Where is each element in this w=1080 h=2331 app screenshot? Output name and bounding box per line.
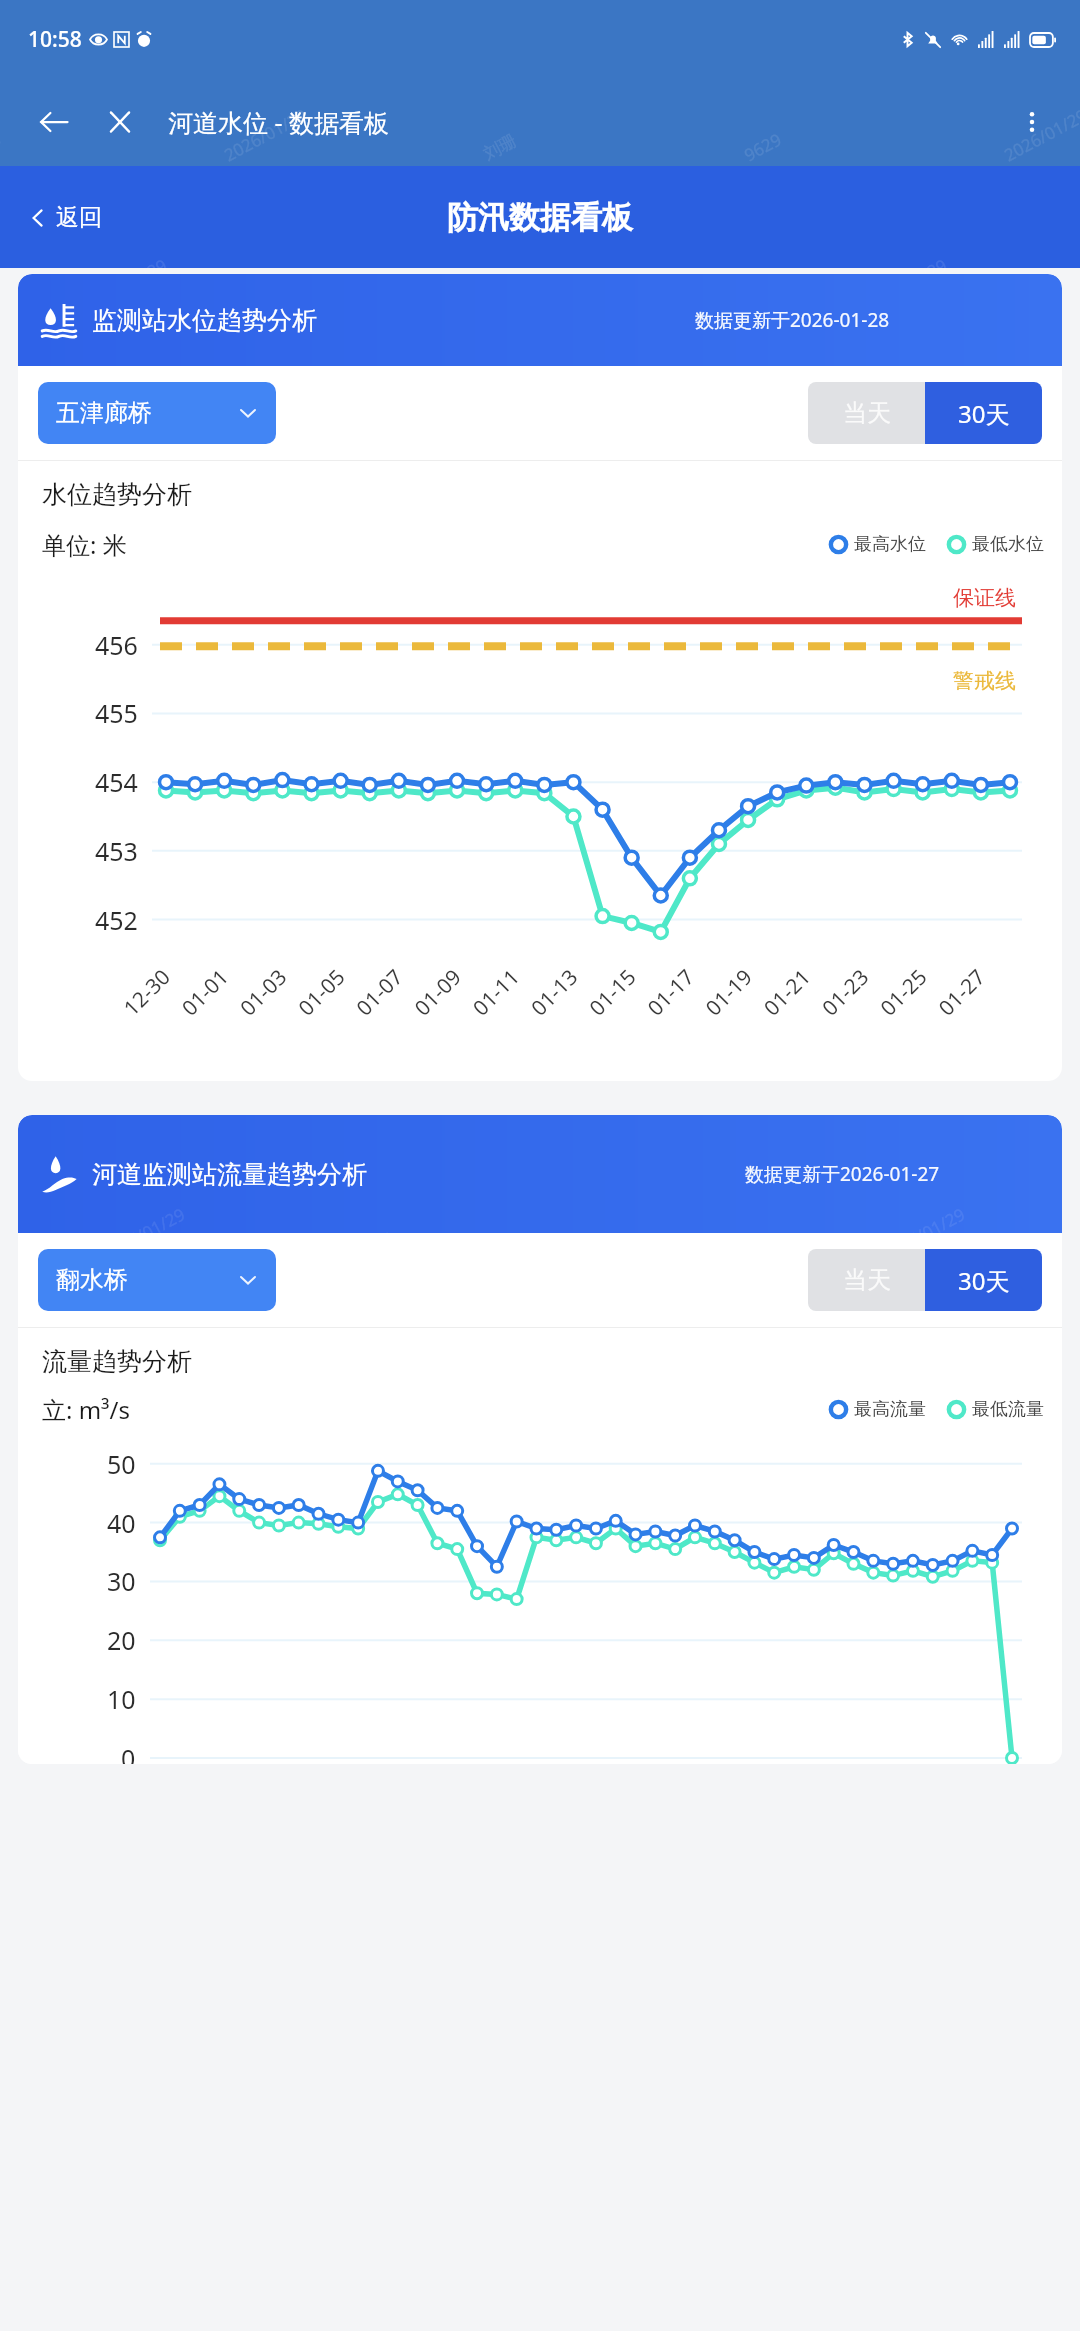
staticText: 最低流量 — [972, 1398, 1044, 1421]
staticText: 监测站水位趋势分析 — [92, 305, 317, 336]
staticText: 当天 — [843, 1265, 891, 1295]
staticText: 河道水位 - 数据看板 — [168, 105, 390, 139]
staticText: 翻水桥 — [56, 1265, 128, 1295]
button[interactable]: Close — [92, 94, 148, 150]
staticText: 返回 — [56, 203, 102, 232]
button[interactable]: Back — [26, 94, 82, 150]
staticText: 30天 — [958, 397, 1010, 430]
button[interactable]: 30天 — [925, 1249, 1042, 1311]
button[interactable]: 当天 — [808, 382, 925, 444]
button[interactable]: More options — [1004, 94, 1060, 150]
staticText: 当天 — [843, 398, 891, 428]
staticText: 10:58 — [28, 25, 82, 54]
staticText: 数据更新于2026-01-27 — [745, 1161, 940, 1187]
staticText: 30天 — [958, 1264, 1010, 1297]
button[interactable]: 当天 — [808, 1249, 925, 1311]
button[interactable]: 翻水桥 — [38, 1249, 276, 1311]
staticText: 最高水位 — [854, 533, 926, 556]
button[interactable]: 返回 — [18, 197, 112, 238]
staticText: 数据更新于2026-01-28 — [695, 307, 890, 333]
staticText: 河道监测站流量趋势分析 — [92, 1159, 367, 1190]
staticText: 最低水位 — [972, 533, 1044, 556]
button[interactable]: 五津廊桥 — [38, 382, 276, 444]
staticText: 五津廊桥 — [56, 398, 152, 428]
staticText: 最高流量 — [854, 1398, 926, 1421]
staticText: 水位趋势分析 — [42, 479, 192, 510]
staticText: 流量趋势分析 — [42, 1346, 192, 1377]
staticText: 防汛数据看板 — [447, 198, 633, 237]
button[interactable]: 30天 — [925, 382, 1042, 444]
staticText: 立: m³/s — [42, 1393, 130, 1426]
staticText: 单位: 米 — [42, 528, 127, 561]
